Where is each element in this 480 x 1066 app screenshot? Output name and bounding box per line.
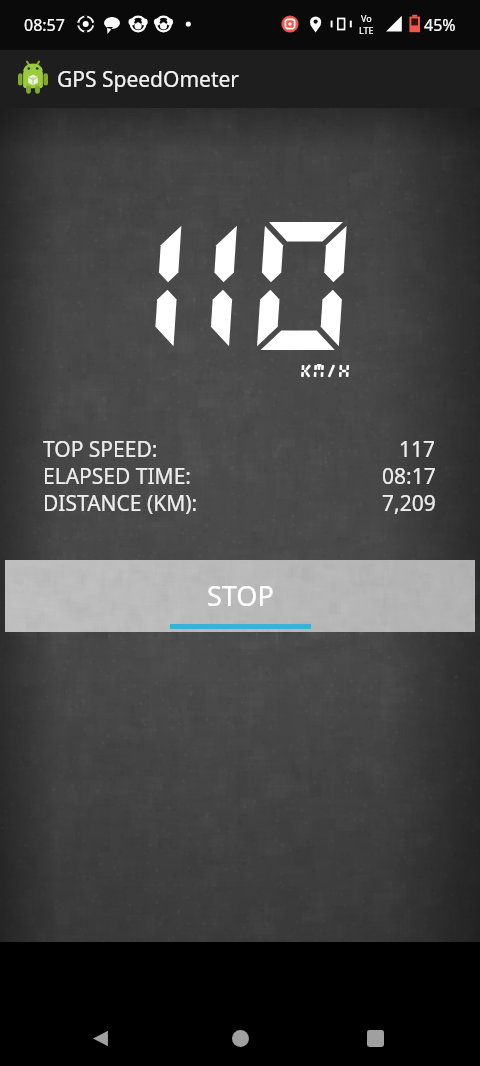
staticText: STOP [207,577,274,614]
staticText: LTE [359,24,374,36]
staticText: 08:57 [24,14,65,36]
button[interactable]: Recent apps [347,1010,403,1066]
staticText: TOP SPEED: [43,435,158,462]
staticText: ELAPSED TIME: [43,462,191,489]
button[interactable]: Home [212,1010,268,1066]
staticText: DISTANCE (KM): [43,489,198,516]
staticText: GPS SpeedOmeter [57,65,240,94]
button[interactable]: GPS SpeedOmeter [0,50,480,108]
staticText: 08:17 [382,462,436,489]
button[interactable]: Back [73,1010,129,1066]
staticText: 45% [424,14,456,36]
staticText: 7,209 [382,489,436,516]
staticText: 117 [399,435,436,462]
staticText: Vo [361,12,372,24]
button[interactable]: STOP [5,560,475,632]
